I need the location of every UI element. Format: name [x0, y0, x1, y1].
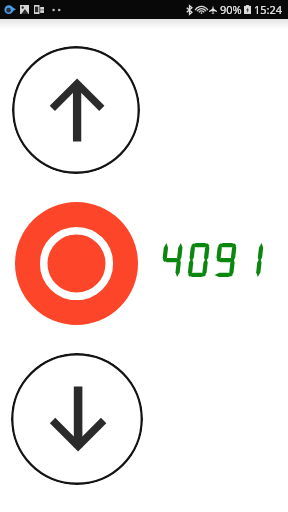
- staticText: 15:24: [254, 2, 283, 17]
- button[interactable]: Scroll down: [11, 353, 143, 485]
- button[interactable]: Scroll up: [12, 46, 140, 174]
- staticText: 90%: [220, 2, 242, 17]
- button[interactable]: Record: [15, 202, 138, 325]
